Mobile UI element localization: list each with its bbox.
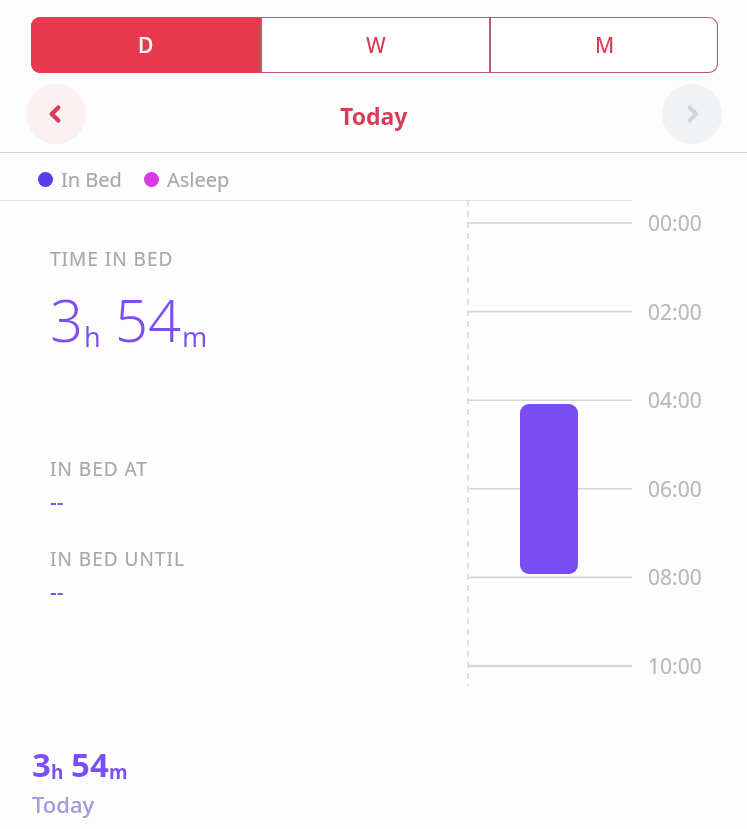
button[interactable]: M [491, 17, 718, 73]
staticText: In Bed [61, 166, 122, 193]
staticText: m [109, 759, 128, 785]
button[interactable]: W [262, 17, 489, 73]
staticText: m [182, 318, 208, 355]
staticText: Asleep [167, 166, 230, 193]
button[interactable]: Previous day [26, 84, 86, 144]
staticText: Today [340, 100, 408, 131]
button[interactable]: D [31, 17, 260, 73]
staticText: 00:00 [648, 209, 702, 237]
staticText: M [595, 31, 615, 60]
staticText: h [84, 318, 101, 355]
staticText: 3 [50, 280, 84, 359]
staticText: W [366, 31, 386, 60]
button[interactable]: Today [274, 98, 474, 132]
staticText: h [51, 759, 64, 785]
staticText: 54 [71, 742, 109, 787]
button[interactable]: Next day [662, 84, 722, 144]
staticText: IN BED UNTIL [50, 546, 185, 572]
staticText: -- [50, 578, 64, 607]
staticText: 10:00 [648, 652, 702, 680]
staticText: D [138, 31, 154, 60]
staticText: Today [32, 789, 95, 819]
staticText: 04:00 [648, 386, 702, 414]
staticText: TIME IN BED [50, 246, 174, 272]
staticText: -- [50, 488, 64, 517]
staticText: 3 [32, 742, 51, 787]
staticText: 02:00 [648, 298, 702, 326]
staticText: 06:00 [648, 475, 702, 503]
staticText: 08:00 [648, 563, 702, 591]
staticText: 54 [115, 280, 182, 359]
staticText: IN BED AT [50, 456, 148, 482]
